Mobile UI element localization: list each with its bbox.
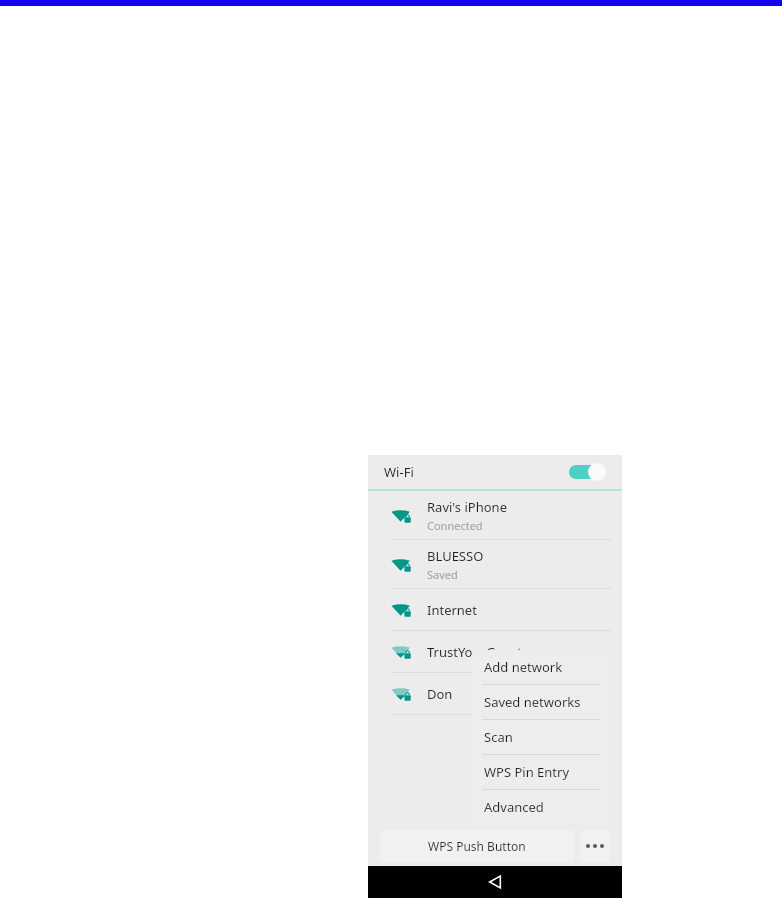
button[interactable]: BLUESSO <box>368 540 622 589</box>
button[interactable]: Saved networks <box>472 685 610 720</box>
staticText: WPS Pin Entry <box>484 763 570 781</box>
staticText: BLUESSO <box>427 547 484 565</box>
staticText: Wi-Fi <box>384 463 414 481</box>
staticText: Scan <box>484 728 513 746</box>
button[interactable]: Ravi's iPhone <box>368 491 622 540</box>
button[interactable]: Scan <box>472 720 610 755</box>
staticText: Internet <box>427 601 477 619</box>
button[interactable]: Back <box>480 867 510 897</box>
staticText: Add network <box>484 658 563 676</box>
button[interactable]: TrustYou_Guest <box>368 631 622 673</box>
button[interactable]: Toggle Wi-Fi <box>568 463 606 481</box>
button[interactable]: Add network <box>472 650 610 685</box>
staticText: Saved networks <box>484 693 581 711</box>
button[interactable]: Don <box>368 673 622 715</box>
button[interactable]: More options <box>580 830 610 862</box>
staticText: Advanced <box>484 798 544 816</box>
button[interactable]: WPS Push Button <box>380 830 574 862</box>
staticText: TrustYou_Guest <box>427 643 523 661</box>
staticText: Connected <box>427 518 483 533</box>
button[interactable]: WPS Pin Entry <box>472 755 610 790</box>
staticText: Don <box>427 685 453 703</box>
staticText: Saved <box>427 567 458 582</box>
staticText: WPS Push Button <box>428 838 526 854</box>
staticText: Ravi's iPhone <box>427 498 507 516</box>
button[interactable]: Internet <box>368 589 622 631</box>
button[interactable]: Advanced <box>472 790 610 824</box>
